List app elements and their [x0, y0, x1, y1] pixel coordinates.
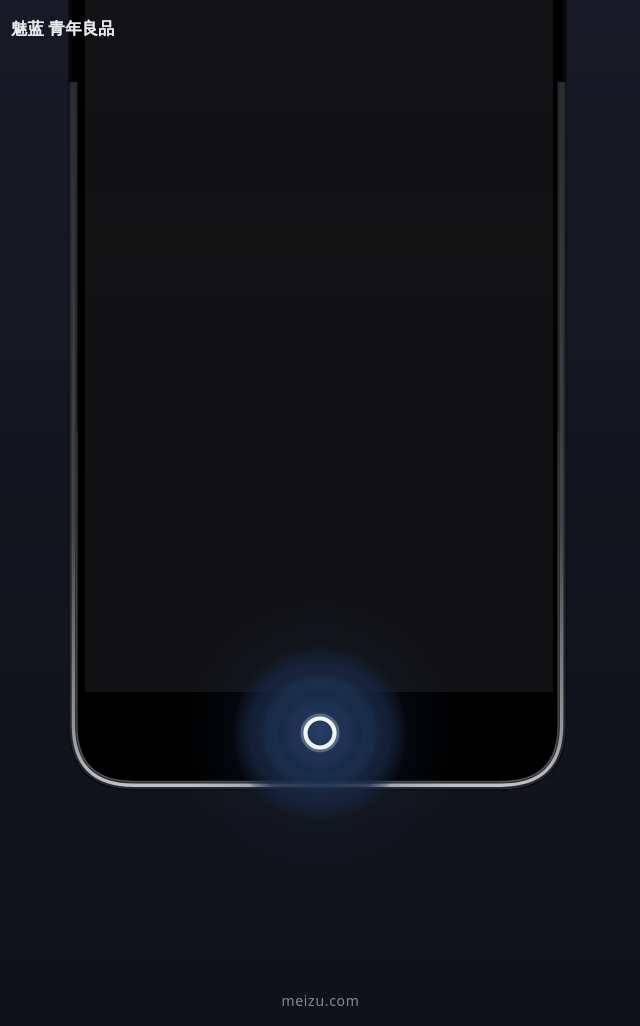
button[interactable]: meizu.com — [271, 987, 370, 1014]
button[interactable]: 魅蓝 青年良品 — [11, 17, 115, 39]
button[interactable]: Home — [276, 689, 364, 777]
staticText: meizu.com — [281, 991, 360, 1010]
